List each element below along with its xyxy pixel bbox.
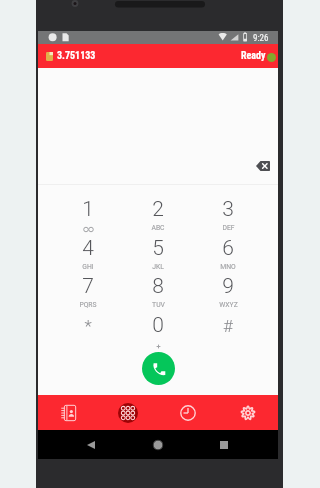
button[interactable]: Recents [216,437,232,453]
button[interactable]: Recents [158,395,218,430]
button[interactable]: Home [150,437,166,453]
button[interactable]: 1 [53,191,123,230]
button[interactable]: * [53,307,123,346]
staticText: ABC [151,224,165,232]
staticText: 7 [82,274,94,299]
button[interactable]: 8 [123,268,193,307]
staticText: WXYZ [219,301,238,309]
staticText: 3.751133 [57,50,96,62]
button[interactable]: 5 [123,230,193,269]
button[interactable]: Settings [218,395,278,430]
button[interactable]: # [193,307,263,346]
staticText: 8 [152,274,164,299]
button[interactable]: Dialpad [98,395,158,430]
button[interactable]: Backspace [252,157,274,175]
staticText: 5 [152,236,164,261]
staticText: 9 [222,274,234,299]
button[interactable]: Back [83,437,99,453]
staticText: 4 [82,236,94,261]
staticText: 9:26 [253,33,269,44]
button[interactable]: Contacts [38,395,98,430]
button[interactable]: 3 [193,191,263,230]
staticText: TUV [152,301,165,309]
staticText: PQRS [79,301,97,309]
staticText: JKL [152,263,164,271]
staticText: Ready [241,50,266,62]
button[interactable]: 4 [53,230,123,269]
staticText: + [156,340,160,348]
staticText: GHI [82,263,94,271]
staticText: 1 [82,197,94,222]
button[interactable]: 7 [53,268,123,307]
staticText: 6 [222,236,234,261]
staticText: # [223,316,233,336]
button[interactable]: 0 [123,307,193,346]
staticText: 0 [152,313,164,338]
staticText: 3 [222,197,234,222]
button[interactable]: Call [142,352,175,385]
button[interactable]: 9 [193,268,263,307]
button[interactable]: 2 [123,191,193,230]
staticText: * [84,316,92,336]
staticText: MNO [220,263,236,271]
staticText: 2 [152,197,164,222]
staticText: DEF [222,224,235,232]
button[interactable]: 6 [193,230,263,269]
